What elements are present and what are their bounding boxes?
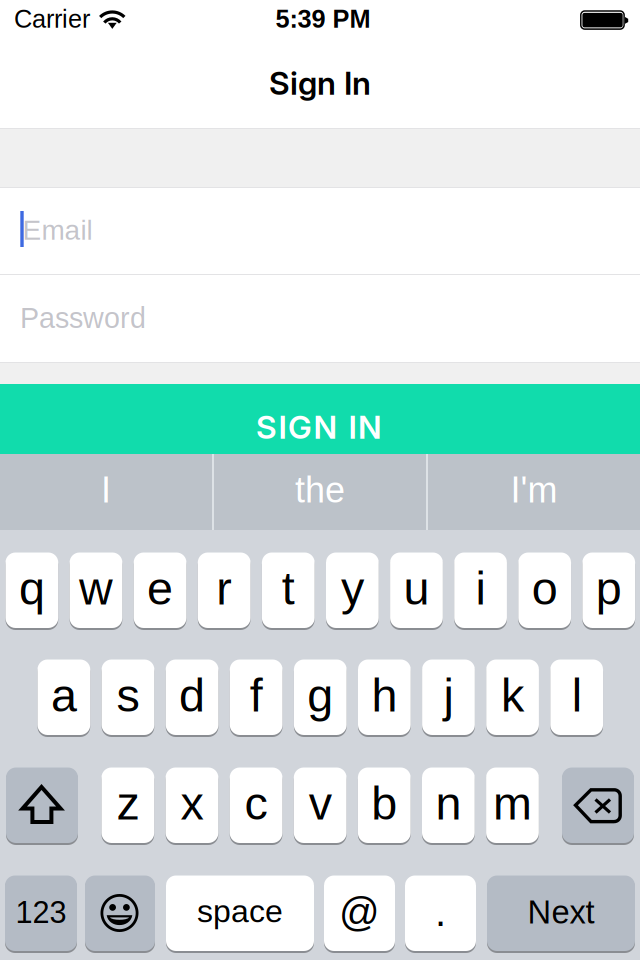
staticText: I'm: [510, 470, 557, 510]
button[interactable]: d: [166, 658, 218, 736]
button[interactable]: r: [198, 551, 251, 629]
button[interactable]: c: [230, 766, 282, 844]
staticText: k: [501, 669, 524, 721]
button[interactable]: x: [166, 766, 218, 844]
staticText: o: [532, 562, 558, 614]
button[interactable]: I'm: [428, 454, 640, 530]
button[interactable]: a: [37, 658, 90, 736]
button[interactable]: j: [422, 658, 475, 736]
button[interactable]: o: [518, 551, 571, 629]
button[interactable]: k: [486, 658, 539, 736]
staticText: Next: [527, 894, 594, 930]
button[interactable]: f: [230, 658, 283, 736]
staticText: SIGN IN: [256, 408, 382, 446]
button[interactable]: Next: [487, 874, 635, 952]
button[interactable]: m: [486, 766, 539, 844]
staticText: l: [572, 669, 582, 721]
button[interactable]: z: [101, 766, 154, 844]
button[interactable]: h: [358, 658, 411, 736]
button[interactable]: b: [358, 766, 411, 844]
staticText: c: [245, 777, 268, 829]
button[interactable]: l: [550, 658, 603, 736]
button[interactable]: s: [102, 658, 154, 736]
staticText: I: [101, 470, 111, 510]
button[interactable]: Delete: [562, 766, 634, 844]
staticText: q: [19, 562, 45, 614]
staticText: u: [403, 562, 429, 614]
staticText: v: [309, 777, 332, 829]
staticText: p: [596, 562, 622, 614]
button[interactable]: i: [454, 551, 507, 629]
button[interactable]: q: [5, 551, 58, 629]
button[interactable]: w: [70, 551, 122, 629]
staticText: y: [341, 562, 364, 614]
staticText: e: [147, 562, 173, 614]
button[interactable]: v: [294, 766, 347, 844]
button[interactable]: Emoji keyboard: [85, 874, 155, 952]
button[interactable]: the: [214, 454, 426, 530]
staticText: 123: [15, 895, 66, 929]
button[interactable]: e: [134, 551, 186, 629]
button[interactable]: space: [166, 874, 314, 952]
staticText: x: [180, 777, 203, 829]
staticText: a: [51, 669, 77, 721]
button[interactable]: g: [294, 658, 347, 736]
staticText: w: [79, 562, 113, 614]
staticText: z: [116, 777, 139, 829]
button[interactable]: t: [262, 551, 315, 629]
button[interactable]: p: [582, 551, 635, 629]
staticText: Email: [22, 214, 92, 246]
staticText: Sign In: [269, 64, 371, 102]
staticText: g: [307, 669, 333, 721]
staticText: i: [476, 562, 486, 614]
staticText: s: [116, 669, 139, 721]
staticText: h: [371, 669, 397, 721]
button[interactable]: y: [326, 551, 379, 629]
staticText: @: [339, 890, 380, 935]
button[interactable]: Email: [0, 188, 640, 274]
staticText: t: [282, 562, 295, 614]
staticText: .: [435, 890, 446, 935]
staticText: r: [216, 562, 232, 614]
staticText: Carrier: [14, 5, 90, 33]
button[interactable]: Password: [0, 275, 640, 362]
staticText: j: [443, 669, 453, 721]
staticText: m: [493, 777, 532, 829]
staticText: n: [435, 777, 461, 829]
button[interactable]: @: [324, 874, 395, 952]
staticText: 5:39 PM: [275, 5, 370, 33]
button[interactable]: u: [390, 551, 443, 629]
staticText: the: [295, 470, 345, 510]
staticText: b: [371, 777, 397, 829]
button[interactable]: SIGN IN: [0, 384, 640, 454]
button[interactable]: .: [405, 874, 476, 952]
button[interactable]: I: [0, 454, 212, 530]
button[interactable]: n: [422, 766, 475, 844]
staticText: f: [250, 669, 263, 721]
button[interactable]: Shift: [6, 766, 78, 844]
staticText: Password: [20, 302, 146, 334]
staticText: d: [179, 669, 205, 721]
button[interactable]: 123: [5, 874, 77, 952]
staticText: space: [197, 893, 283, 929]
